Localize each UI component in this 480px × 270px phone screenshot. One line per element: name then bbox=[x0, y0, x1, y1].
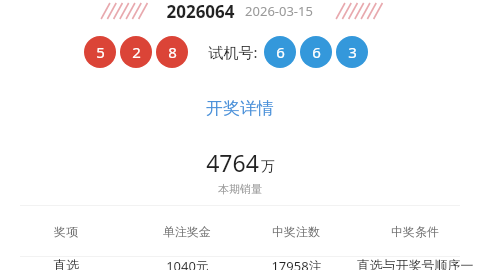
staticText: 单注奖金 bbox=[163, 224, 211, 239]
staticText: 6 bbox=[276, 42, 285, 62]
button[interactable]: 开奖详情 bbox=[0, 98, 480, 119]
button[interactable]: 5 bbox=[84, 36, 116, 68]
staticText: 中奖条件 bbox=[391, 224, 439, 239]
staticText: 1040元 bbox=[166, 257, 209, 270]
staticText: 2026064 bbox=[166, 0, 235, 22]
staticText: 万 bbox=[261, 158, 275, 176]
staticText: 本期销量 bbox=[218, 182, 262, 196]
button[interactable]: 直选 bbox=[0, 257, 480, 270]
staticText: 中奖注数 bbox=[272, 224, 320, 239]
button[interactable]: 6 bbox=[300, 36, 332, 68]
button[interactable]: 8 bbox=[156, 36, 188, 68]
staticText: 6 bbox=[312, 42, 321, 62]
button[interactable]: 奖项 bbox=[0, 206, 480, 256]
button[interactable]: 6 bbox=[264, 36, 296, 68]
staticText: 直选 bbox=[53, 257, 79, 270]
staticText: 3 bbox=[348, 42, 357, 62]
staticText: 2026-03-15 bbox=[245, 2, 313, 20]
staticText: 4764 bbox=[206, 147, 259, 178]
staticText: 奖项 bbox=[54, 224, 78, 239]
staticText: 直选与开奖号顺序一致 bbox=[356, 257, 474, 270]
staticText: 17958注 bbox=[271, 257, 322, 270]
staticText: 试机号: bbox=[208, 42, 258, 62]
staticText: 8 bbox=[168, 42, 177, 62]
button[interactable]: 2 bbox=[120, 36, 152, 68]
staticText: 5 bbox=[96, 42, 105, 62]
staticText: 开奖详情 bbox=[206, 98, 274, 119]
staticText: 2 bbox=[132, 42, 141, 62]
button[interactable]: 3 bbox=[336, 36, 368, 68]
